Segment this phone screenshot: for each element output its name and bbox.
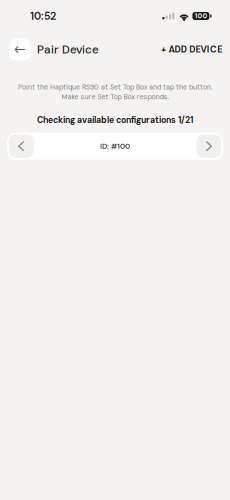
staticText: Checking available configurations 1/21 [37, 114, 193, 126]
button[interactable]: + ADD DEVICE [161, 44, 222, 55]
button[interactable]: Next configuration [196, 134, 221, 158]
staticText: Pair Device [37, 42, 99, 57]
staticText: Point the Haptique RS90 at Set Top Box a… [18, 82, 212, 92]
staticText: + ADD DEVICE [161, 44, 222, 55]
staticText: Make sure Set Top Box responds. [61, 92, 168, 101]
staticText: 100 [194, 11, 207, 20]
button[interactable]: Back [9, 38, 31, 60]
staticText: ID: #100 [100, 141, 130, 151]
staticText: 10:52 [30, 9, 56, 23]
button[interactable]: Previous configuration [9, 134, 34, 158]
